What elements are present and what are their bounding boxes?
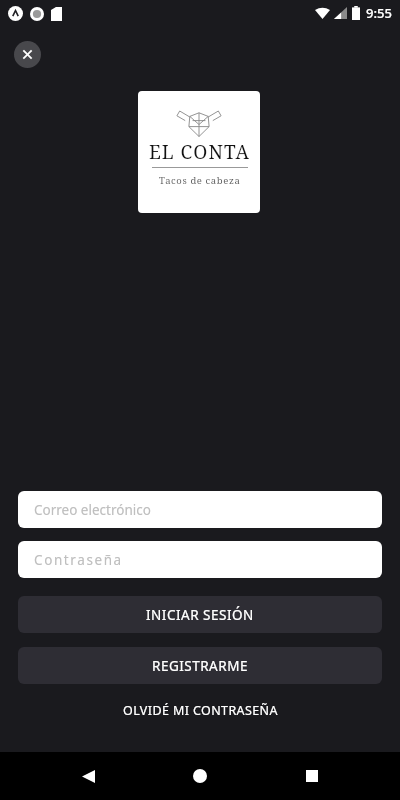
staticText: Correo electrónico bbox=[34, 501, 151, 519]
button[interactable]: Contraseña bbox=[18, 541, 382, 578]
staticText: Contraseña bbox=[34, 551, 123, 569]
staticText: Tacos de cabeza bbox=[159, 174, 241, 187]
button[interactable]: INICIAR SESIÓN bbox=[18, 596, 382, 633]
button[interactable]: Home bbox=[180, 756, 220, 796]
button[interactable]: OLVIDÉ MI CONTRASEÑA bbox=[18, 699, 382, 721]
button[interactable]: REGISTRARME bbox=[18, 647, 382, 684]
staticText: EL CONTA bbox=[149, 139, 250, 165]
button[interactable]: Recents bbox=[292, 756, 332, 796]
staticText: REGISTRARME bbox=[152, 657, 248, 675]
staticText: 9:55 bbox=[366, 4, 392, 22]
button[interactable]: Correo electrónico bbox=[18, 491, 382, 528]
staticText: OLVIDÉ MI CONTRASEÑA bbox=[123, 702, 278, 719]
staticText: INICIAR SESIÓN bbox=[146, 606, 254, 624]
button[interactable]: Close bbox=[14, 41, 41, 68]
button[interactable]: Back bbox=[68, 756, 108, 796]
